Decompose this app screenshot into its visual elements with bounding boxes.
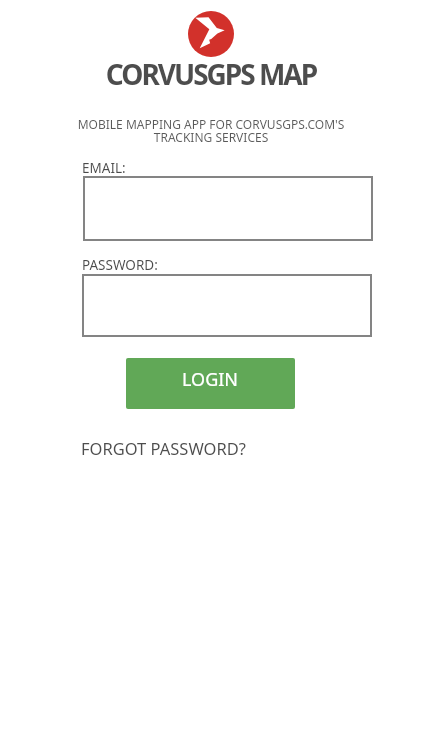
staticText: CORVUSGPS MAP [0, 55, 422, 93]
staticText: MOBILE MAPPING APP FOR CORVUSGPS.COM'S T… [0, 116, 422, 146]
button[interactable]: FORGOT PASSWORD? [81, 437, 246, 459]
button[interactable] [82, 274, 372, 337]
staticText: FORGOT PASSWORD? [81, 437, 246, 459]
button[interactable] [83, 176, 373, 241]
staticText: EMAIL: [82, 159, 126, 177]
staticText: PASSWORD: [82, 256, 158, 274]
button[interactable]: LOGIN [126, 358, 295, 409]
staticText: LOGIN [182, 367, 239, 392]
